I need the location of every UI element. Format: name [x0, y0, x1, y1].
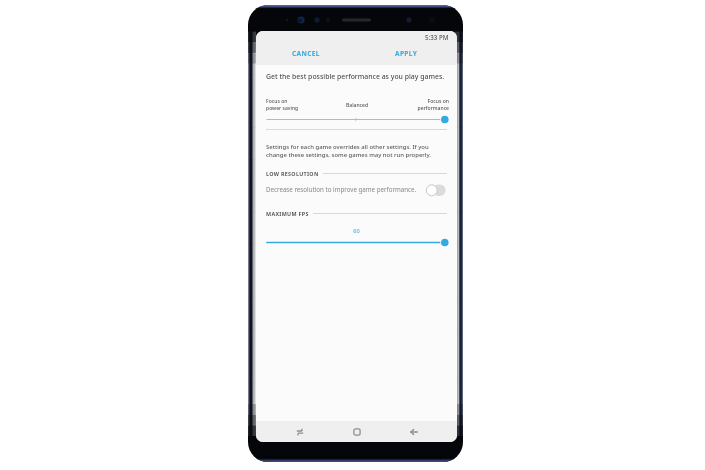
staticText: Settings for each game overrides all oth…	[266, 143, 444, 159]
staticText: APPLY	[395, 49, 418, 58]
staticText: 5:33 PM	[425, 33, 449, 41]
button[interactable]: CANCEL	[256, 42, 356, 65]
button[interactable]: APPLY	[356, 42, 457, 65]
button[interactable]	[256, 114, 457, 125]
button[interactable]: Recent apps	[290, 421, 309, 442]
staticText: 60	[256, 227, 457, 235]
staticText: MAXIMUM FPS	[266, 210, 309, 217]
staticText: Focus on performance	[417, 98, 449, 112]
staticText: Balanced	[346, 102, 369, 109]
button[interactable]	[256, 237, 457, 248]
staticText: Focus on power saving	[266, 98, 299, 112]
staticText: Get the best possible performance as you…	[266, 72, 445, 81]
staticText: CANCEL	[292, 49, 320, 58]
button[interactable]: Decrease resolution to improve game perf…	[256, 181, 457, 197]
button[interactable]: Home	[347, 421, 366, 442]
button[interactable]: Back	[404, 421, 423, 442]
staticText: LOW RESOLUTION	[266, 170, 319, 177]
staticText: Decrease resolution to improve game perf…	[266, 185, 417, 193]
